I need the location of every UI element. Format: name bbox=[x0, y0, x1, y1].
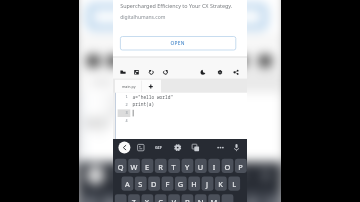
button[interactable]: Translate bbox=[190, 141, 203, 154]
button[interactable]: Redo bbox=[159, 62, 172, 76]
button[interactable]: T bbox=[167, 159, 179, 174]
button[interactable]: G bbox=[174, 176, 186, 191]
button[interactable]: V bbox=[167, 193, 179, 202]
button[interactable]: Voice input bbox=[231, 141, 244, 154]
button[interactable]: O bbox=[219, 159, 231, 174]
button[interactable]: Keyboard settings bbox=[172, 141, 185, 154]
button[interactable]: Collapse toolbar bbox=[117, 141, 130, 154]
button[interactable]: main.py tab bbox=[114, 80, 146, 93]
button[interactable]: Q bbox=[115, 159, 127, 174]
button[interactable]: L bbox=[226, 176, 238, 191]
button[interactable]: Share bbox=[229, 62, 242, 76]
button[interactable]: Y bbox=[180, 159, 192, 174]
button[interactable]: M bbox=[206, 193, 218, 202]
button[interactable]: Save bbox=[130, 62, 143, 76]
button[interactable]: Stickers bbox=[133, 141, 146, 154]
button[interactable]: Z bbox=[128, 193, 140, 202]
button[interactable]: W bbox=[128, 159, 140, 174]
button[interactable]: E bbox=[141, 159, 153, 174]
button[interactable]: GIF bbox=[152, 141, 165, 154]
button[interactable]: R bbox=[154, 159, 166, 174]
button[interactable]: P bbox=[232, 159, 244, 174]
button[interactable]: I bbox=[206, 159, 218, 174]
button[interactable]: D bbox=[148, 176, 160, 191]
button[interactable]: J bbox=[200, 176, 212, 191]
button[interactable]: Dark mode bbox=[196, 62, 209, 76]
button[interactable]: B bbox=[180, 193, 192, 202]
button[interactable]: N bbox=[193, 193, 205, 202]
button[interactable]: More options bbox=[215, 141, 228, 154]
button[interactable]: C bbox=[154, 193, 166, 202]
button[interactable]: U bbox=[193, 159, 205, 174]
button[interactable]: S bbox=[135, 176, 147, 191]
button[interactable]: F bbox=[161, 176, 173, 191]
button[interactable]: OPEN bbox=[121, 36, 239, 50]
button[interactable]: H bbox=[187, 176, 199, 191]
button[interactable]: Settings bbox=[213, 62, 226, 76]
button[interactable]: New tab bbox=[146, 80, 157, 93]
button[interactable]: K bbox=[213, 176, 225, 191]
button[interactable]: X bbox=[141, 193, 153, 202]
button[interactable]: Open file bbox=[116, 62, 129, 76]
button[interactable]: A bbox=[122, 176, 134, 191]
button[interactable]: Undo bbox=[145, 62, 158, 76]
